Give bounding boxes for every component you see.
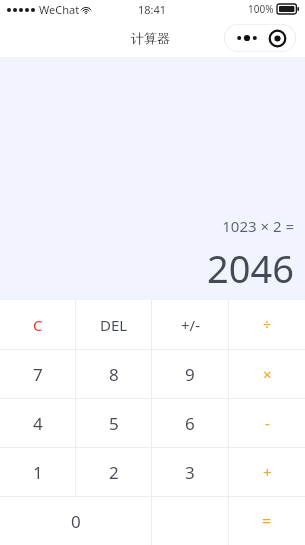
staticText: = [262, 510, 272, 532]
button[interactable]: 3 [152, 448, 228, 496]
button[interactable]: 7 [0, 350, 75, 398]
staticText: - [265, 413, 270, 433]
button[interactable]: 5 [76, 399, 151, 447]
button[interactable]: C [0, 300, 75, 349]
staticText: 0 [71, 510, 81, 533]
button[interactable]: - [229, 399, 305, 447]
button[interactable]: ÷ [229, 300, 305, 349]
button[interactable]: × [229, 350, 305, 398]
button[interactable]: DEL [76, 300, 151, 349]
button[interactable]: 6 [152, 399, 228, 447]
button[interactable]: 9 [152, 350, 228, 398]
staticText: ÷ [263, 315, 272, 334]
staticText: 18:41 [138, 2, 167, 17]
button[interactable]: + [229, 448, 305, 496]
button[interactable]: 4 [0, 399, 75, 447]
staticText: C [33, 315, 43, 335]
button[interactable]: +/- [152, 300, 228, 349]
staticText: WeChat [39, 2, 80, 17]
staticText: 5 [109, 412, 119, 435]
staticText: 3 [185, 461, 195, 484]
button[interactable]: 1 [0, 448, 75, 496]
staticText: 9 [185, 363, 195, 386]
staticText: +/- [181, 315, 200, 335]
staticText: 计算器 [131, 30, 170, 46]
staticText: 2046 [207, 242, 294, 294]
button[interactable]: 8 [76, 350, 151, 398]
staticText: 4 [33, 412, 43, 435]
staticText: 1023 × 2 = [222, 216, 294, 236]
staticText: 100% [248, 2, 274, 16]
staticText: 1 [33, 461, 43, 484]
staticText: 8 [109, 363, 119, 386]
staticText: 6 [185, 412, 195, 435]
staticText: + [263, 462, 272, 482]
staticText: DEL [100, 315, 128, 335]
staticText: 7 [33, 363, 43, 386]
button[interactable]: 2 [76, 448, 151, 496]
button[interactable]: 0 [0, 497, 151, 545]
button[interactable]: Mini program menu [224, 24, 296, 52]
button[interactable]: = [229, 497, 305, 545]
staticText: × [263, 364, 272, 384]
staticText: 2 [109, 461, 119, 484]
